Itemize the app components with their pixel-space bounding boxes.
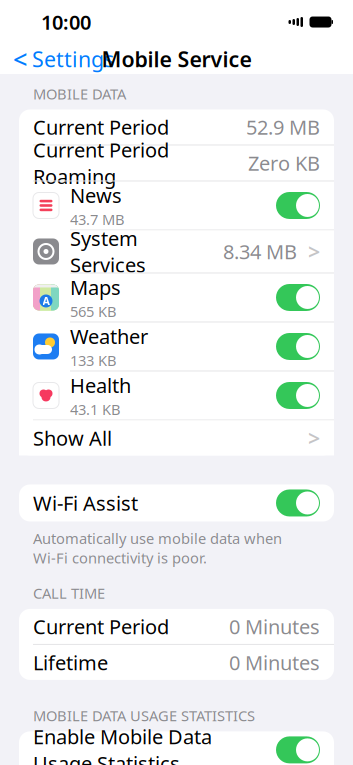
staticText: Current Period Roaming (33, 136, 169, 189)
button[interactable]: Toggle (276, 192, 320, 219)
staticText: 0 Minutes (229, 649, 320, 676)
staticText: Zero KB (248, 150, 320, 176)
staticText: Current Period (33, 114, 169, 140)
button[interactable]: Toggle (276, 736, 320, 763)
staticText: MOBILE DATA (33, 84, 126, 103)
staticText: Weather (70, 323, 148, 350)
button[interactable]: Toggle (276, 382, 320, 409)
staticText: Enable Mobile Data Usage Statistics (33, 723, 212, 765)
staticText: Automatically use mobile data when Wi-Fi… (33, 528, 282, 567)
button[interactable]: Toggle (276, 284, 320, 311)
staticText: 52.9 MB (246, 114, 320, 140)
staticText: 43.7 MB (70, 209, 125, 229)
button[interactable]: System Services (19, 230, 334, 272)
staticText: Health (70, 372, 131, 399)
staticText: Maps (70, 274, 121, 301)
staticText: 133 KB (70, 350, 117, 370)
button[interactable]: Show All (19, 420, 334, 455)
staticText: MOBILE DATA USAGE STATISTICS (33, 706, 255, 725)
staticText: Lifetime (33, 649, 108, 676)
button[interactable]: Toggle (276, 489, 320, 516)
staticText: Show All (33, 425, 112, 451)
staticText: 8.34 MB (223, 238, 297, 265)
staticText: News (70, 182, 122, 209)
staticText: > (308, 424, 320, 452)
staticText: 565 KB (70, 301, 117, 321)
staticText: < (13, 42, 27, 76)
button[interactable]: Toggle (276, 333, 320, 360)
staticText: 0 Minutes (229, 613, 320, 640)
staticText: Current Period (33, 613, 169, 640)
staticText: Mobile Service (101, 45, 251, 73)
staticText: System Services (70, 225, 146, 278)
staticText: A (42, 294, 49, 308)
staticText: Wi-Fi Assist (33, 490, 138, 516)
staticText: 10:00 (41, 9, 91, 35)
staticText: CALL TIME (33, 583, 105, 603)
staticText: Settings (32, 45, 114, 73)
staticText: 43.1 KB (70, 399, 121, 419)
button[interactable]: < (0, 36, 114, 82)
staticText: > (308, 237, 320, 266)
